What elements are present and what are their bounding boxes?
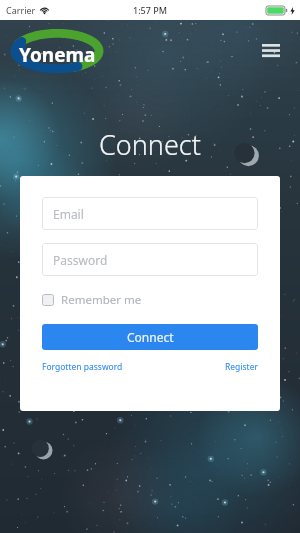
button[interactable]: Register bbox=[225, 361, 258, 373]
staticText: 1:57 PM bbox=[133, 4, 167, 16]
staticText: Connect bbox=[99, 126, 201, 163]
button[interactable]: Password bbox=[42, 243, 258, 276]
button[interactable]: Email bbox=[42, 197, 258, 230]
staticText: Register bbox=[225, 361, 258, 373]
staticText: Password bbox=[53, 252, 108, 268]
staticText: Forgotten password bbox=[42, 361, 123, 373]
staticText: Remember me bbox=[61, 292, 142, 308]
staticText: Connect bbox=[127, 329, 174, 345]
button[interactable]: Connect bbox=[42, 324, 258, 350]
staticText: Email bbox=[53, 206, 84, 222]
staticText: Carrier bbox=[6, 4, 36, 16]
button[interactable]: Remember me bbox=[42, 290, 142, 310]
staticText: Yonema bbox=[19, 42, 96, 68]
button[interactable]: Menu bbox=[254, 34, 288, 68]
button[interactable]: Forgotten password bbox=[42, 361, 123, 373]
